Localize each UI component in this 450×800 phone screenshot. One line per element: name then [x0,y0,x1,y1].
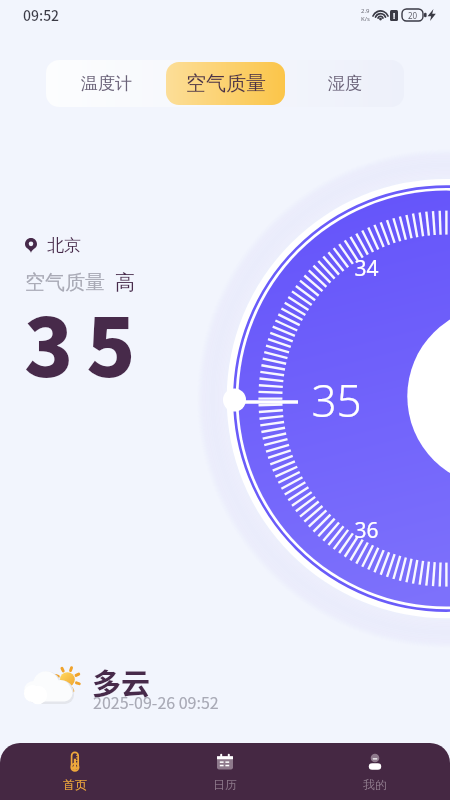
staticText: 20 [408,10,418,21]
button[interactable]: 日历 [150,743,300,800]
button[interactable]: 我的 [300,743,450,800]
staticText: 2.9 [361,7,370,15]
staticText: 首页 [63,777,87,792]
staticText: 2025-09-26 09:52 [93,690,219,713]
staticText: 空气质量 [186,71,266,96]
staticText: 36 [354,516,379,545]
staticText: 35 [311,370,362,430]
staticText: 高 [115,270,135,295]
staticText: 日历 [213,777,237,792]
button[interactable]: 空气质量 [166,62,285,105]
staticText: 湿度 [328,73,362,94]
staticText: 我的 [363,777,387,792]
staticText: K/s [361,15,370,23]
staticText: 温度计 [81,73,132,94]
button[interactable]: 温度计 [46,62,166,105]
staticText: 35 [24,283,149,400]
staticText: 北京 [47,235,81,256]
button[interactable]: 湿度 [285,62,404,105]
staticText: 09:52 [23,5,60,25]
staticText: 34 [354,254,379,283]
staticText: 多云 [92,661,151,703]
button[interactable]: 首页 [0,743,150,800]
staticText: 空气质量 [25,270,105,295]
staticText: ! [393,10,396,21]
